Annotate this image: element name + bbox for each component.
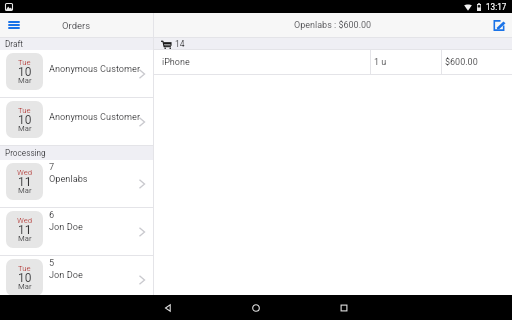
staticText: Tue <box>18 58 31 67</box>
staticText: Orders <box>62 20 91 31</box>
staticText: Anonymous Customer <box>49 63 141 74</box>
button[interactable]: Tue <box>0 256 153 295</box>
staticText: 1 u <box>374 57 387 68</box>
staticText: Jon Doe <box>49 269 83 280</box>
staticText: Mar <box>18 76 32 85</box>
staticText: 7 <box>49 161 55 172</box>
staticText: Openlabs : $600.00 <box>294 20 372 31</box>
staticText: Wed <box>17 168 33 177</box>
staticText: Processing <box>5 148 46 158</box>
staticText: Wed <box>17 216 33 225</box>
button[interactable]: Wed <box>0 160 153 207</box>
staticText: 10 <box>18 271 32 285</box>
staticText: Mar <box>18 124 32 133</box>
staticText: 11 <box>18 223 32 237</box>
staticText: Draft <box>5 39 23 49</box>
staticText: Anonymous Customer <box>49 111 141 122</box>
staticText: 10 <box>18 65 32 79</box>
staticText: Mar <box>18 234 32 243</box>
staticText: 14 <box>175 39 185 49</box>
staticText: 13:17 <box>486 2 507 12</box>
staticText: 11 <box>18 175 32 189</box>
button[interactable]: Home <box>212 295 300 320</box>
button[interactable]: Tue <box>0 98 153 145</box>
button[interactable]: Open navigation menu <box>0 13 28 37</box>
staticText: 6 <box>49 209 55 220</box>
button[interactable]: Back <box>124 295 212 320</box>
button[interactable]: Recent apps <box>300 295 388 320</box>
button[interactable]: Edit order <box>486 13 512 37</box>
button[interactable]: Tue <box>0 50 153 97</box>
staticText: 10 <box>18 113 32 127</box>
staticText: Mar <box>18 282 32 291</box>
button[interactable]: Wed <box>0 208 153 255</box>
staticText: Tue <box>18 106 31 115</box>
staticText: $600.00 <box>445 57 478 68</box>
staticText: Jon Doe <box>49 221 83 232</box>
staticText: Mar <box>18 186 32 195</box>
staticText: Tue <box>18 264 31 273</box>
staticText: 5 <box>49 257 55 268</box>
staticText: Openlabs <box>49 173 88 184</box>
staticText: iPhone <box>162 57 190 68</box>
